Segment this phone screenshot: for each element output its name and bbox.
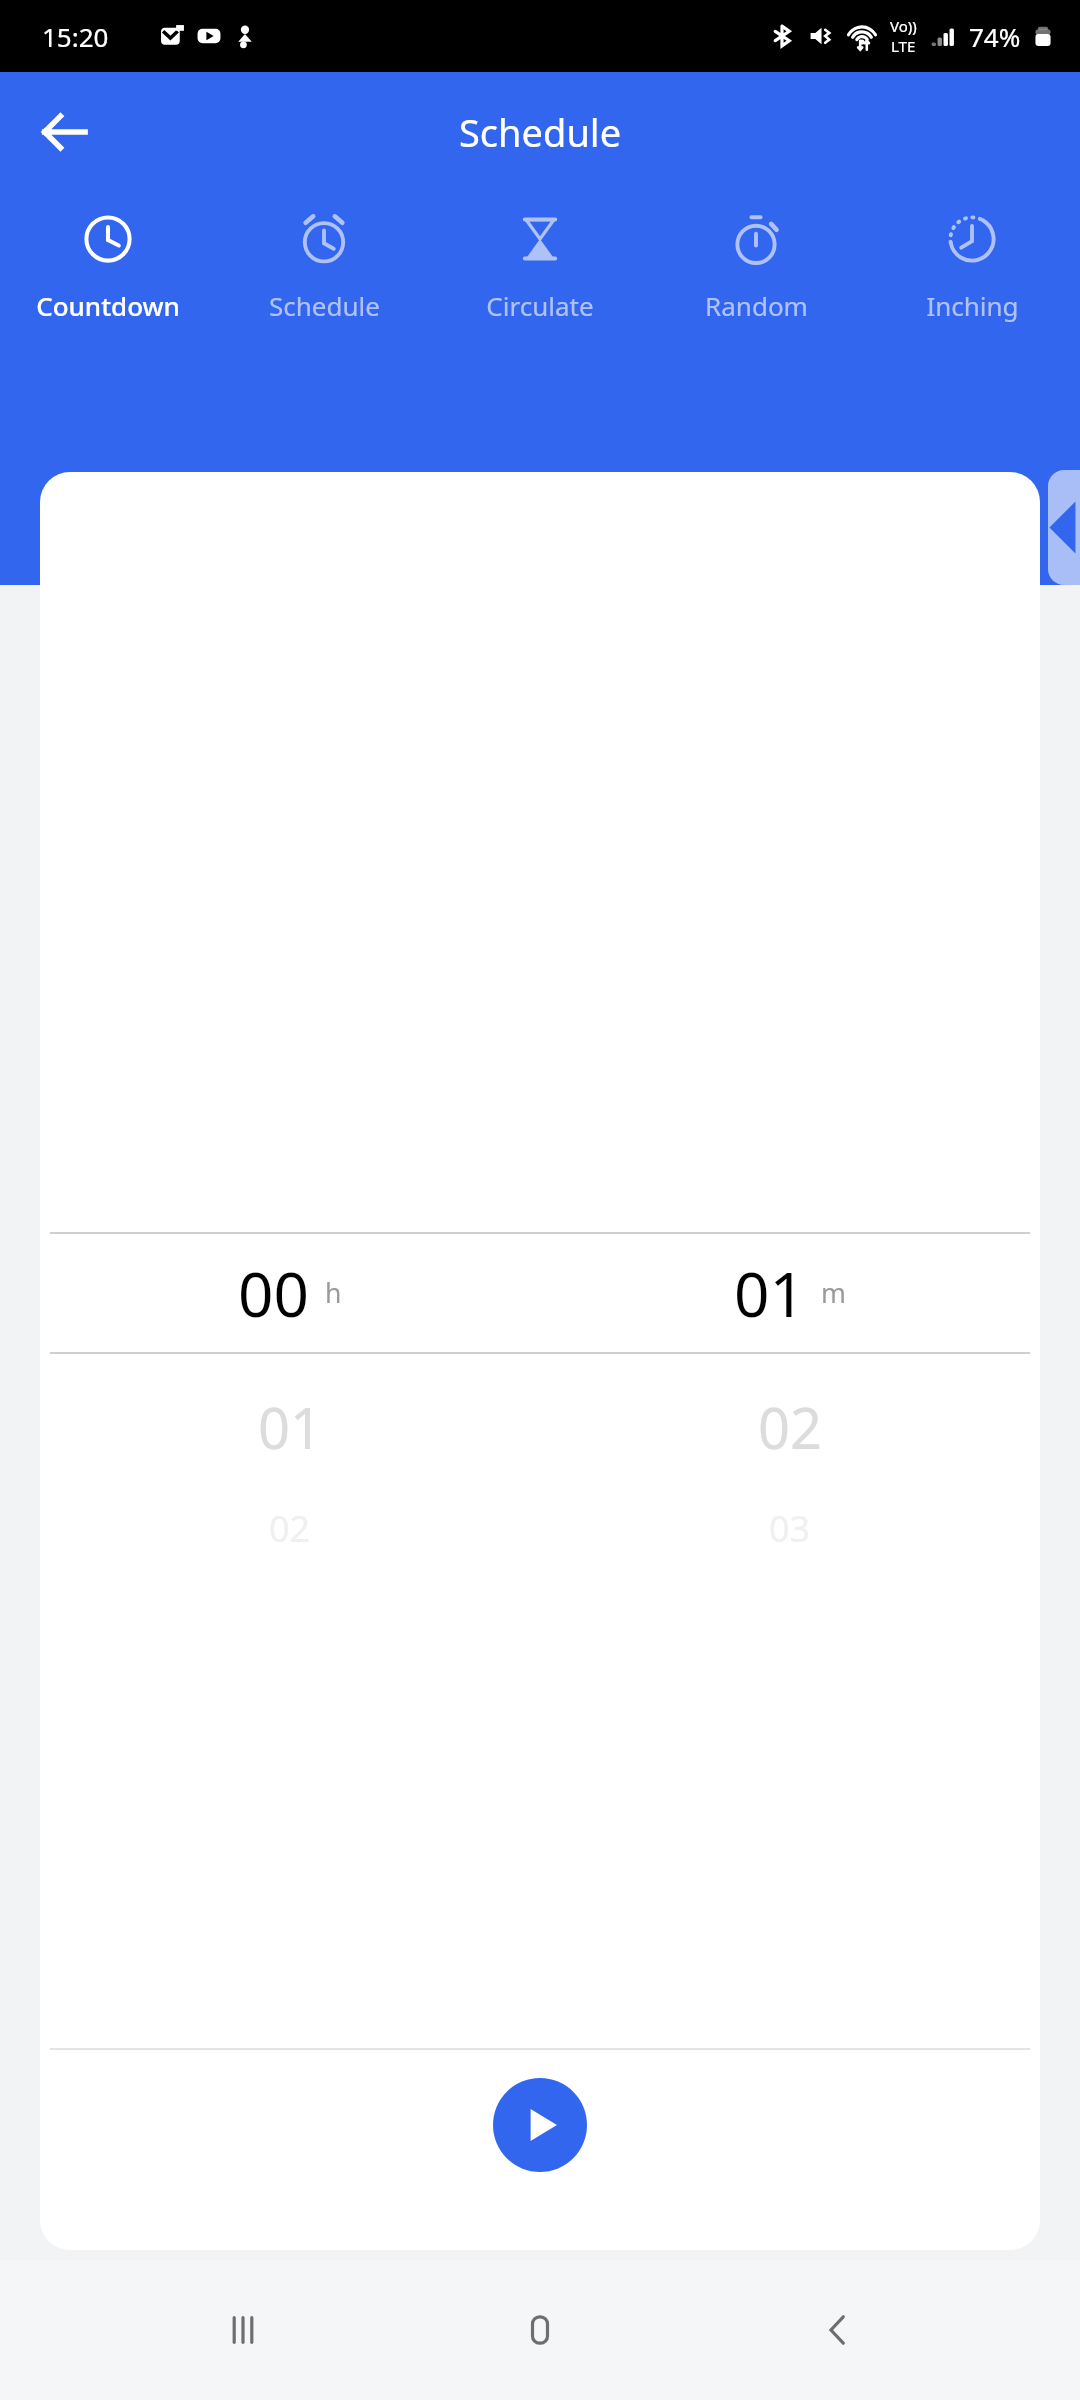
button[interactable]: Schedule: [216, 192, 432, 352]
staticText: LTE: [891, 36, 916, 56]
staticText: 00: [238, 1251, 309, 1335]
staticText: Circulate: [486, 288, 594, 323]
button[interactable]: Inching: [864, 192, 1080, 352]
staticText: 15:20: [42, 19, 109, 54]
button[interactable]: 01: [540, 1234, 1040, 1352]
button[interactable]: Home: [485, 2275, 595, 2385]
staticText: 02: [269, 1504, 311, 1553]
button[interactable]: Random: [648, 192, 864, 352]
staticText: Schedule: [459, 106, 622, 158]
staticText: 01: [258, 1389, 323, 1465]
button[interactable]: Expand panel: [1048, 470, 1080, 585]
button[interactable]: Back: [783, 2275, 893, 2385]
button[interactable]: Start: [493, 2078, 587, 2172]
button[interactable]: Recents: [188, 2275, 298, 2385]
staticText: Vo)): [890, 16, 917, 36]
staticText: 74%: [969, 19, 1021, 54]
staticText: 03: [769, 1504, 811, 1553]
staticText: 01: [734, 1251, 805, 1335]
button[interactable]: 00: [40, 1234, 540, 1352]
button[interactable]: Back: [22, 90, 106, 174]
button[interactable]: Circulate: [432, 192, 648, 352]
staticText: Schedule: [269, 288, 380, 323]
button[interactable]: Countdown: [0, 192, 216, 352]
staticText: m: [821, 1275, 846, 1311]
staticText: Inching: [926, 288, 1019, 323]
staticText: 02: [758, 1389, 823, 1465]
staticText: Random: [705, 288, 808, 323]
staticText: h: [325, 1275, 342, 1311]
staticText: Countdown: [36, 288, 180, 323]
